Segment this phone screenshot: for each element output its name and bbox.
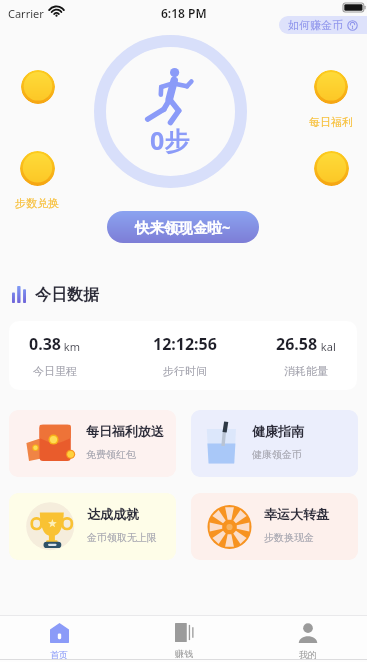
staticText: 今日里程 (33, 364, 77, 378)
staticText: 如何赚金币 (288, 18, 343, 32)
staticText: 0.38 (29, 333, 61, 355)
button[interactable]: 0.38 (9, 321, 357, 390)
staticText: 我的 (299, 649, 317, 660)
button[interactable]: 达成成就 (9, 493, 176, 560)
staticText: 每日福利 (309, 115, 353, 129)
staticText: 6:18 PM (161, 5, 207, 21)
staticText: 26.58 (276, 333, 318, 355)
staticText: 免费领红包 (86, 448, 136, 461)
button[interactable]: 金币 (21, 70, 55, 104)
staticText: kal (318, 339, 336, 354)
button[interactable]: 金币 (20, 151, 55, 186)
staticText: 金币领取无上限 (87, 531, 157, 544)
staticText: 每日福利放送 (86, 423, 164, 439)
staticText: 幸运大转盘 (264, 506, 329, 522)
button[interactable]: 快来领现金啦~ (107, 211, 259, 243)
button[interactable]: 赚钱 (154, 618, 214, 662)
button[interactable]: 每日福利放送 (9, 410, 176, 477)
button[interactable]: 首页 (29, 618, 89, 662)
staticText: 健康指南 (252, 423, 304, 439)
staticText: 快来领现金啦~ (135, 217, 231, 237)
button[interactable]: 金币 (314, 151, 349, 186)
button[interactable]: 如何赚金币 (279, 16, 367, 34)
button[interactable]: 幸运大转盘 (191, 493, 358, 560)
staticText: 今日数据 (35, 285, 99, 305)
staticText: 步数换现金 (264, 531, 314, 544)
staticText: km (61, 339, 81, 354)
staticText: 步数兑换 (15, 196, 59, 210)
staticText: 消耗能量 (284, 364, 328, 378)
staticText: 步行时间 (163, 364, 207, 378)
staticText: 达成成就 (87, 506, 139, 522)
staticText: 首页 (50, 649, 68, 660)
button[interactable]: 健康指南 (191, 410, 358, 477)
button[interactable]: 金币 (314, 70, 348, 104)
staticText: 健康领金币 (252, 448, 302, 461)
button[interactable]: 我的 (278, 618, 338, 662)
staticText: Carrier (8, 6, 44, 21)
staticText: 12:12:56 (153, 333, 217, 355)
staticText: 0步 (150, 123, 190, 157)
staticText: 赚钱 (175, 648, 193, 659)
